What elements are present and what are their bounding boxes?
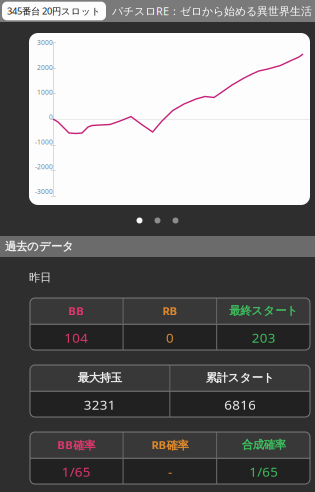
staticText: - [168, 462, 172, 481]
staticText: 3231 [84, 395, 116, 414]
button[interactable]: 345番台 20円スロット [2, 2, 106, 20]
staticText: BB確率 [57, 437, 95, 452]
staticText: -2000 [35, 162, 53, 171]
staticText: 345番台 20円スロット [7, 5, 101, 17]
staticText: 過去のデータ [5, 239, 74, 254]
staticText: 1000 [37, 88, 53, 97]
staticText: 昨日 [29, 270, 51, 285]
staticText: 2000 [37, 63, 53, 72]
staticText: 1/65 [249, 462, 278, 481]
staticText: 203 [252, 328, 276, 347]
staticText: 合成確率 [242, 438, 286, 452]
staticText: 1/65 [62, 462, 91, 481]
staticText: 0 [166, 328, 174, 347]
staticText: RB確率 [151, 437, 188, 452]
staticText: 3000 [37, 38, 53, 47]
staticText: 最終スタート [229, 304, 298, 318]
staticText: RB [162, 303, 177, 318]
staticText: -3000 [35, 187, 53, 196]
staticText: 最大持玉 [78, 371, 122, 385]
staticText: 累計スタート [206, 371, 275, 385]
staticText: パチスロRE：ゼロから始める異世界生活 [112, 4, 312, 18]
staticText: 104 [64, 328, 88, 347]
staticText: BB [68, 303, 84, 318]
staticText: -1000 [35, 137, 53, 146]
staticText: 6816 [224, 395, 256, 414]
staticText: 0 [49, 112, 53, 122]
